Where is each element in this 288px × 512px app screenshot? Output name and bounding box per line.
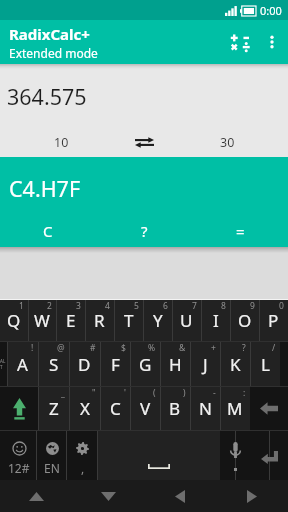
staticText: ? [141, 221, 148, 241]
staticText: T [124, 309, 134, 332]
staticText: S [49, 353, 59, 376]
button[interactable]: " [69, 387, 100, 430]
button[interactable]: Up [0, 480, 72, 512]
button[interactable]: 1 [0, 300, 28, 341]
button[interactable]: Down [72, 480, 144, 512]
staticText: % [148, 342, 156, 354]
button[interactable]: More options [259, 20, 285, 64]
button[interactable]: EN [37, 431, 67, 480]
staticText: 9 [250, 300, 255, 312]
staticText: 364.575 [7, 82, 87, 111]
staticText: $ [121, 342, 126, 354]
button[interactable]: Space [98, 431, 220, 480]
staticText: A [17, 353, 28, 376]
button[interactable]: 12# [0, 431, 37, 480]
button[interactable]: 3 [56, 300, 85, 341]
staticText: & [179, 342, 186, 354]
button[interactable]: Enter [251, 431, 288, 480]
staticText: _ [61, 387, 65, 399]
button[interactable]: + [190, 342, 220, 386]
button[interactable]: Back [144, 480, 216, 512]
staticText: J [203, 353, 208, 376]
button[interactable]: 6 [143, 300, 172, 341]
button[interactable]: 0 [259, 300, 288, 341]
staticText: O [238, 309, 252, 332]
button[interactable]: Swap radix [103, 129, 186, 155]
staticText: ? [242, 342, 246, 354]
button[interactable]: 4 [85, 300, 114, 341]
staticText: ALT [0, 358, 7, 370]
staticText: , [81, 460, 85, 476]
staticText: 30 [220, 134, 235, 151]
staticText: K [230, 353, 241, 376]
staticText: C [110, 397, 121, 420]
staticText: B [169, 397, 181, 420]
staticText: Z [49, 397, 59, 420]
button[interactable]: @ [38, 342, 69, 386]
button[interactable]: 10 [19, 129, 103, 155]
staticText: @ [57, 342, 65, 354]
button[interactable]: ? [220, 342, 250, 386]
button[interactable]: # [69, 342, 100, 386]
staticText: V [140, 397, 151, 420]
staticText: 0 [279, 300, 284, 312]
staticText: ! [31, 342, 34, 354]
staticText: ( [153, 387, 156, 399]
staticText: 12# [8, 460, 30, 476]
button[interactable]: , [67, 431, 98, 480]
button[interactable]: & [160, 342, 190, 386]
button[interactable]: = [192, 218, 288, 244]
staticText: 2 [47, 300, 52, 312]
staticText: " [92, 387, 96, 399]
button[interactable]: $ [100, 342, 130, 386]
button[interactable]: 7 [172, 300, 201, 341]
staticText: C4.H7F [9, 174, 81, 203]
button[interactable]: : [220, 387, 250, 430]
button[interactable]: ALT [0, 342, 7, 386]
staticText: 8 [221, 300, 226, 312]
staticText: G [139, 353, 152, 376]
button[interactable]: Voice input [220, 431, 251, 480]
staticText: ) [183, 387, 186, 399]
button[interactable]: / [250, 342, 280, 386]
staticText: + [211, 342, 216, 354]
staticText: EN [44, 460, 60, 476]
button[interactable]: ) [160, 387, 190, 430]
button[interactable]: ? [96, 218, 192, 244]
button[interactable]: ' [100, 387, 130, 430]
staticText: Y [153, 309, 163, 332]
button[interactable]: 2 [28, 300, 56, 341]
staticText: R [94, 309, 105, 332]
button[interactable]: - [190, 387, 220, 430]
button[interactable]: 9 [230, 300, 259, 341]
staticText: : [243, 387, 246, 399]
staticText: / [272, 342, 276, 354]
staticText: F [111, 353, 120, 376]
staticText: - [213, 387, 216, 399]
button[interactable]: C [0, 218, 96, 244]
button[interactable]: % [130, 342, 160, 386]
button[interactable]: ( [130, 387, 160, 430]
staticText: Extended mode [9, 45, 98, 61]
button[interactable]: Backspace [250, 387, 288, 430]
staticText: # [90, 342, 96, 354]
button[interactable]: Shift [0, 387, 38, 430]
staticText: C [43, 221, 53, 241]
button[interactable]: Forward [216, 480, 288, 512]
staticText: W [34, 309, 50, 332]
button[interactable]: 30 [186, 129, 269, 155]
staticText: E [66, 309, 76, 332]
staticText: D [78, 353, 91, 376]
staticText: 3 [76, 300, 81, 312]
staticText: I [213, 309, 219, 332]
staticText: 1 [19, 300, 24, 312]
button[interactable]: 8 [201, 300, 230, 341]
staticText: P [268, 309, 279, 332]
button[interactable]: ! [7, 342, 38, 386]
button[interactable]: 5 [114, 300, 143, 341]
button[interactable]: Operations [221, 20, 259, 64]
staticText: N [199, 397, 212, 420]
button[interactable]: _ [38, 387, 69, 430]
staticText: = [236, 221, 245, 241]
